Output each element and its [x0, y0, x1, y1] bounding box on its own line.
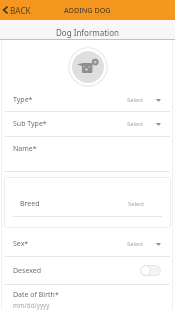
button[interactable]: Sex*	[0, 232, 175, 256]
staticText: Desexed	[13, 266, 42, 276]
staticText: Sex*	[13, 239, 29, 249]
button[interactable]: BACK	[0, 0, 36, 20]
button[interactable]: Name*	[0, 137, 175, 171]
button[interactable]: Desexed	[0, 257, 175, 284]
staticText: BACK	[10, 5, 31, 16]
staticText: Select	[127, 240, 144, 248]
button[interactable]: Add dog photo	[68, 47, 108, 87]
staticText: Name*	[13, 144, 37, 154]
button[interactable]: Date of Birth*	[0, 285, 175, 309]
staticText: Select	[127, 96, 144, 104]
button[interactable]: Sub Type*	[0, 112, 175, 136]
staticText: Select	[127, 120, 144, 128]
staticText: Sub Type*	[13, 119, 47, 129]
staticText: Type*	[13, 95, 33, 105]
button[interactable]: Type*	[0, 88, 175, 111]
staticText: ADDING DOG	[64, 5, 111, 15]
staticText: Breed	[20, 199, 40, 209]
staticText: Date of Birth*	[13, 290, 59, 300]
button[interactable]: Breed	[4, 192, 171, 216]
staticText: Select	[128, 200, 145, 208]
staticText: Dog Information	[56, 27, 119, 38]
staticText: mm/dd/yyyy	[13, 301, 50, 309]
